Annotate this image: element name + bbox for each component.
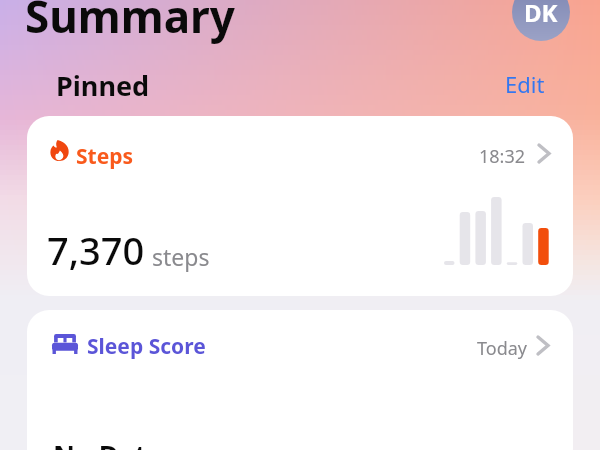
staticText: No Data (53, 436, 163, 450)
staticText: Steps (76, 142, 134, 171)
staticText: Sleep Score (87, 332, 206, 361)
staticText: Today (477, 336, 527, 361)
button[interactable]: Edit (505, 69, 545, 99)
button[interactable]: Steps (27, 116, 573, 296)
button[interactable]: Sleep Score (27, 310, 573, 450)
staticText: 7,370 (47, 224, 145, 276)
staticText: 18:32 (479, 144, 526, 169)
button[interactable]: DK (512, 0, 570, 41)
staticText: Pinned (56, 67, 150, 104)
staticText: DK (524, 0, 558, 29)
staticText: steps (152, 241, 210, 272)
staticText: Summary (25, 0, 235, 46)
